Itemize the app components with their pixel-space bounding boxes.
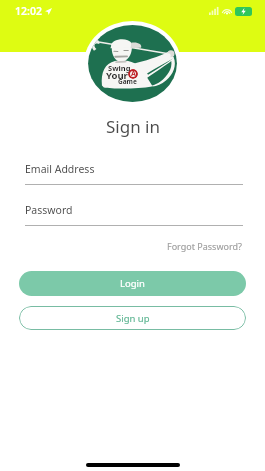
staticText: Sign in [106,115,160,138]
staticText: Login [120,277,145,290]
staticText: A [131,69,136,79]
button[interactable]: Forgot Password? [165,238,244,254]
button[interactable]: Login [19,271,246,296]
staticText: 12:02 [15,4,42,18]
staticText: Password [25,203,73,217]
other: Swing Your A Game logo [84,21,181,106]
button[interactable]: Sign up [19,306,246,330]
staticText: Email Address [25,162,95,176]
staticText: Your [106,69,128,82]
staticText: Swing [108,63,131,73]
button[interactable]: Email Address [25,162,243,185]
staticText: Sign up [116,312,150,325]
staticText: Game [118,77,137,86]
button[interactable]: Password [25,203,243,226]
